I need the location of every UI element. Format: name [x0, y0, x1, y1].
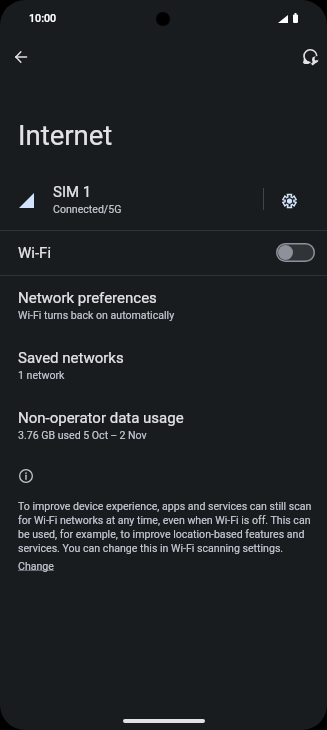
staticText: Saved networks	[18, 349, 124, 367]
button[interactable]: Saved networks	[0, 336, 327, 384]
staticText: SIM 1	[53, 183, 92, 201]
staticText: Internet	[18, 119, 113, 151]
staticText: Wi-Fi	[18, 244, 52, 262]
button[interactable]: Reset settings	[294, 41, 326, 73]
button[interactable]: Change	[18, 560, 54, 572]
staticText: 3.76 GB used 5 Oct – 2 Nov	[18, 429, 147, 441]
staticText: 1 network	[18, 369, 65, 381]
staticText: Non-operator data usage	[18, 409, 184, 427]
staticText: Wi-Fi turns back on automatically	[18, 309, 175, 321]
staticText: 10:00	[29, 12, 57, 25]
button[interactable]	[0, 172, 327, 228]
button[interactable]: Wi-Fi	[0, 231, 327, 275]
button[interactable]: Non-operator data usage	[0, 396, 327, 444]
staticText: Network preferences	[18, 289, 157, 307]
button[interactable]: SIM settings	[273, 184, 306, 217]
staticText: To improve device experience, apps and s…	[18, 500, 314, 554]
button[interactable]: Network preferences	[0, 276, 327, 324]
button[interactable]: Back	[5, 41, 37, 73]
staticText: Connected/5G	[53, 203, 122, 215]
staticText: Change	[18, 560, 54, 572]
